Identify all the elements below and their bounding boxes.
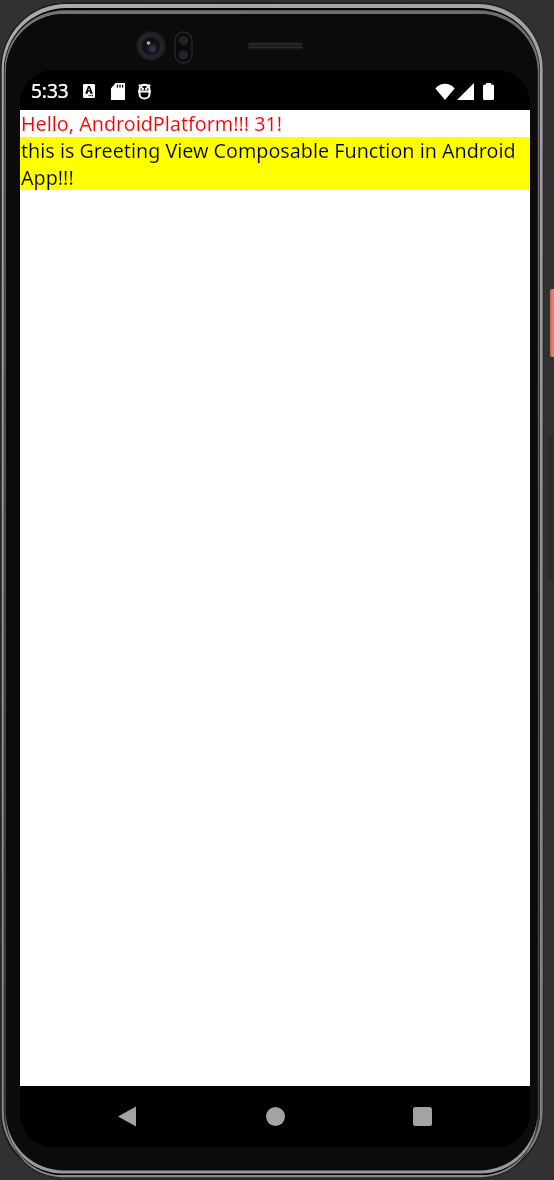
button[interactable]: Home xyxy=(251,1092,299,1140)
staticText: this is Greeting View Composable Functio… xyxy=(21,137,530,190)
staticText: Hello, AndroidPlatform!!! 31! xyxy=(21,110,283,137)
button[interactable]: Back xyxy=(103,1092,151,1140)
staticText: 5:33 xyxy=(31,78,69,104)
button[interactable]: Recent apps xyxy=(398,1092,446,1140)
